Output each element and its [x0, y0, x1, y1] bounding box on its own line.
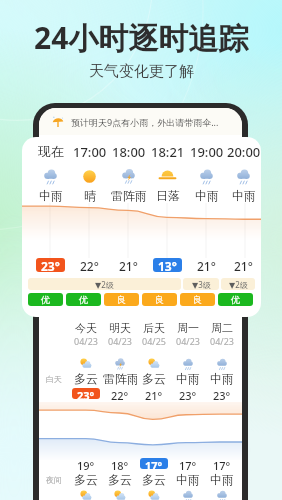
button[interactable]: 优	[66, 293, 101, 306]
staticText: 中雨	[39, 188, 63, 203]
staticText: 中雨	[210, 472, 234, 487]
staticText: 04/25	[142, 335, 166, 347]
staticText: ▼2级	[95, 279, 114, 290]
staticText: 18:21	[151, 143, 185, 161]
staticText: 04/23	[176, 335, 200, 347]
staticText: 04/23	[108, 335, 132, 347]
staticText: 多云	[142, 472, 166, 487]
staticText: 04/23	[210, 335, 234, 347]
staticText: 21°	[145, 388, 163, 403]
staticText: 周二	[211, 321, 233, 335]
button[interactable]: 明天	[103, 321, 137, 347]
staticText: 雷阵雨	[111, 188, 147, 203]
button[interactable]: ▼3级	[183, 278, 219, 290]
staticText: 白天	[46, 374, 62, 384]
staticText: 中雨	[176, 472, 200, 487]
staticText: 22°	[80, 258, 99, 274]
staticText: 22°	[111, 388, 129, 403]
staticText: 17°	[213, 458, 231, 473]
button[interactable]: 23°	[41, 258, 60, 272]
button[interactable]: 周二	[205, 321, 239, 347]
staticText: 19°	[77, 458, 95, 473]
staticText: 雷阵雨	[103, 371, 137, 386]
staticText: 04/23	[74, 335, 98, 347]
staticText: 多云	[108, 472, 132, 487]
button[interactable]: 预计明天9点有小雨，外出请带雨伞...	[39, 108, 242, 135]
staticText: 中雨	[176, 371, 200, 386]
button[interactable]: 良	[180, 293, 215, 306]
staticText: 多云	[74, 472, 98, 487]
staticText: 今天	[75, 321, 97, 335]
staticText: 明天	[109, 321, 131, 335]
staticText: 多云	[74, 371, 98, 386]
button[interactable]: 23°	[77, 388, 95, 399]
staticText: 日落	[156, 188, 180, 203]
staticText: 23°	[41, 258, 60, 272]
staticText: 23°	[77, 388, 95, 399]
staticText: 优	[231, 294, 240, 305]
staticText: 17:00	[73, 143, 107, 161]
staticText: 20:00	[227, 143, 261, 161]
staticText: 23°	[213, 388, 231, 403]
button[interactable]: 良	[142, 293, 177, 306]
button[interactable]: 良	[104, 293, 139, 306]
button[interactable]: 优	[28, 293, 63, 306]
staticText: ▼3级	[192, 279, 211, 290]
staticText: 良	[155, 294, 164, 305]
staticText: 后天	[143, 321, 165, 335]
staticText: 17°	[145, 458, 163, 469]
staticText: 夜间	[46, 475, 62, 485]
staticText: 18:00	[112, 143, 146, 161]
staticText: 现在	[38, 143, 64, 159]
staticText: 优	[79, 294, 88, 305]
staticText: 13°	[158, 258, 177, 272]
staticText: 18°	[111, 458, 129, 473]
staticText: 21°	[119, 258, 138, 274]
staticText: 中雨	[210, 371, 234, 386]
button[interactable]: 周一	[171, 321, 205, 347]
staticText: 21°	[234, 258, 253, 274]
button[interactable]: 后天	[137, 321, 171, 347]
staticText: 21°	[197, 258, 216, 274]
button[interactable]: ▼2级	[28, 278, 181, 290]
staticText: 预计明天9点有小雨，外出请带雨伞...	[71, 116, 219, 128]
staticText: 中雨	[195, 188, 219, 203]
button[interactable]: 13°	[158, 258, 177, 272]
staticText: 多云	[142, 371, 166, 386]
staticText: 24小时逐时追踪	[34, 17, 249, 58]
staticText: 天气变化更了解	[89, 62, 194, 81]
staticText: 优	[41, 294, 50, 305]
staticText: ▼2级	[229, 279, 248, 290]
staticText: 良	[117, 294, 126, 305]
staticText: 周一	[177, 321, 199, 335]
staticText: 晴	[84, 188, 96, 203]
staticText: 17°	[179, 458, 197, 473]
staticText: 中雨	[232, 188, 256, 203]
staticText: 19:00	[190, 143, 224, 161]
button[interactable]: 17°	[145, 458, 163, 469]
button[interactable]: ▼2级	[221, 278, 255, 290]
button[interactable]: 今天	[69, 321, 103, 347]
staticText: 23°	[179, 388, 197, 403]
button[interactable]: 优	[218, 293, 253, 306]
staticText: 良	[193, 294, 202, 305]
